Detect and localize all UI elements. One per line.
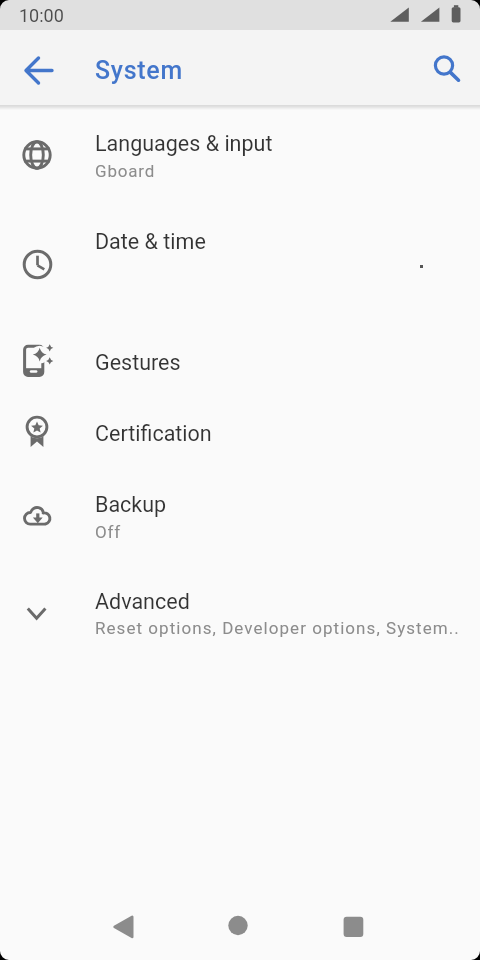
staticText: Date & time [95, 229, 206, 254]
button[interactable] [0, 397, 480, 468]
button[interactable] [0, 215, 480, 312]
staticText: Off [95, 522, 121, 542]
staticText: Reset options, Developer options, System… [95, 618, 460, 638]
button[interactable] [15, 46, 63, 94]
button[interactable] [0, 327, 480, 397]
staticText: Backup [95, 492, 167, 517]
button[interactable] [423, 46, 471, 94]
button[interactable] [0, 107, 480, 203]
staticText: Gestures [95, 350, 181, 375]
button[interactable] [0, 468, 480, 564]
button[interactable] [214, 902, 262, 950]
staticText: 10:00 [19, 5, 64, 26]
button[interactable] [0, 565, 480, 661]
staticText: Gboard [95, 161, 156, 181]
button[interactable] [329, 902, 377, 950]
staticText: System [95, 56, 183, 85]
button[interactable] [99, 902, 147, 950]
staticText: Certification [95, 421, 212, 446]
staticText: Advanced [95, 589, 190, 614]
staticText: Languages & input [95, 131, 273, 156]
